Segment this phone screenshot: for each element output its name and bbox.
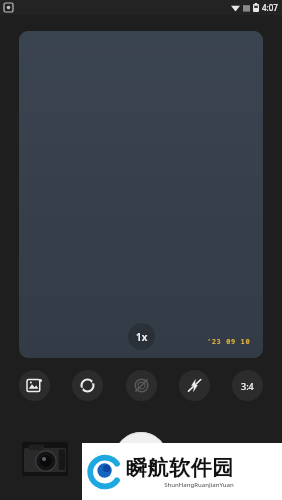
staticText: '23 09 10 — [207, 337, 251, 347]
button[interactable]: 1x — [19, 31, 263, 358]
staticText: 瞬航软件园 — [126, 455, 234, 481]
button[interactable]: Timer — [72, 370, 103, 401]
staticText: 1x — [136, 330, 148, 344]
staticText: 3:4 — [241, 380, 254, 392]
button[interactable]: 1x — [128, 323, 155, 350]
staticText: 4:07 — [262, 2, 278, 13]
button[interactable]: Filters — [19, 370, 50, 401]
button[interactable]: Flash off — [179, 370, 210, 401]
button[interactable]: Shutter — [114, 432, 168, 486]
button[interactable]: 3:4 — [232, 370, 263, 401]
button[interactable]: Switch camera — [210, 444, 258, 474]
button[interactable]: Gallery — [22, 442, 68, 476]
staticText: ShunHangRuanJianYuan — [126, 481, 272, 489]
button[interactable]: Effects off — [126, 370, 157, 401]
